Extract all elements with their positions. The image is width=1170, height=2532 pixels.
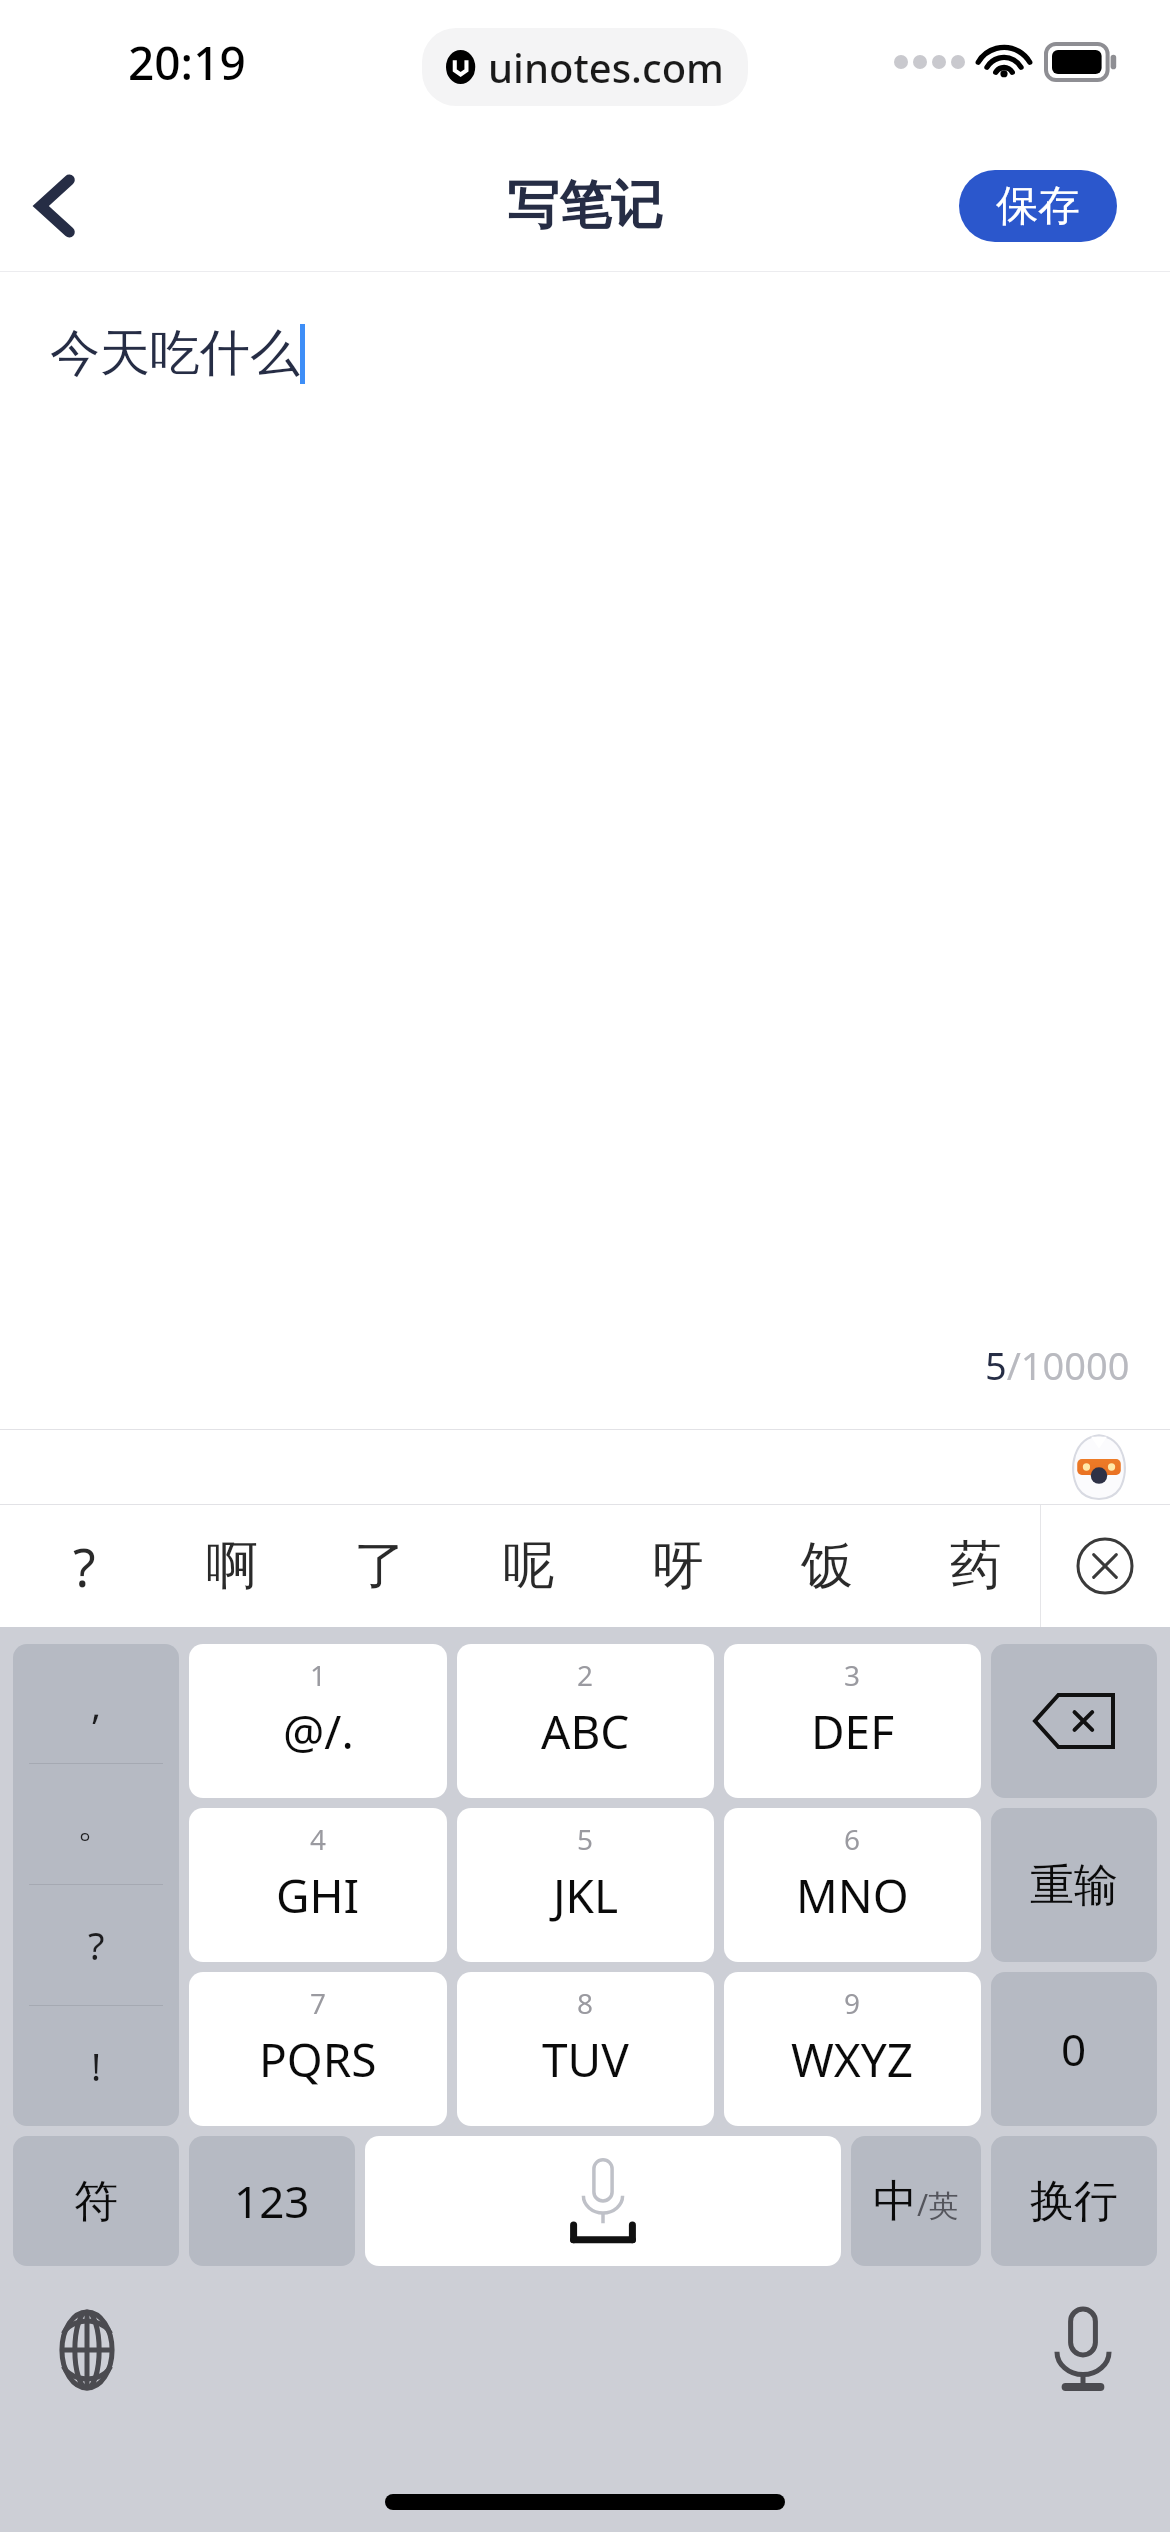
staticText: 7 xyxy=(310,1984,327,2022)
button[interactable]: 6 xyxy=(724,1808,981,1962)
button[interactable]: 2 xyxy=(457,1644,714,1798)
button[interactable]: 换行 xyxy=(991,2136,1157,2266)
staticText: uinotes.com xyxy=(488,40,724,94)
button[interactable]: 0 xyxy=(991,1972,1157,2126)
staticText: ! xyxy=(91,2040,102,2092)
staticText: , xyxy=(91,1678,102,1730)
button[interactable]: 中/英 xyxy=(851,2136,981,2266)
staticText: 0 xyxy=(1061,2019,1087,2079)
button[interactable]: 7 xyxy=(189,1972,447,2126)
button[interactable]: Backspace xyxy=(991,1644,1157,1798)
button[interactable]: ? xyxy=(10,1505,158,1627)
staticText: 呀 xyxy=(652,1533,704,1599)
staticText: TUV xyxy=(542,2028,629,2091)
staticText: DEF xyxy=(811,1700,895,1763)
button[interactable]: Close candidates xyxy=(1040,1505,1170,1627)
button[interactable]: Voice input xyxy=(1038,2305,1128,2395)
staticText: ? xyxy=(88,1919,105,1971)
staticText: 5 xyxy=(577,1820,594,1858)
staticText: 20:19 xyxy=(128,31,246,94)
button[interactable]: 4 xyxy=(189,1808,447,1962)
staticText: 了 xyxy=(354,1533,406,1599)
staticText: 药 xyxy=(950,1533,1002,1599)
button[interactable]: 呀 xyxy=(603,1505,752,1627)
staticText: WXYZ xyxy=(791,2028,914,2091)
button[interactable]: 8 xyxy=(457,1972,714,2126)
button[interactable]: , xyxy=(13,1644,179,2126)
button[interactable]: Switch keyboard xyxy=(42,2305,132,2395)
button[interactable]: 啊 xyxy=(158,1505,306,1627)
staticText: 5/10000 xyxy=(985,1339,1130,1391)
staticText: @/. xyxy=(283,1700,354,1763)
staticText: 9 xyxy=(844,1984,861,2022)
staticText: 1 xyxy=(310,1656,327,1694)
staticText: 写笔记 xyxy=(507,173,663,239)
button[interactable]: 5 xyxy=(457,1808,714,1962)
button[interactable]: Emoji xyxy=(1062,1430,1136,1504)
button[interactable]: 9 xyxy=(724,1972,981,2126)
staticText: 重输 xyxy=(1030,1858,1118,1913)
staticText: PQRS xyxy=(259,2028,377,2091)
staticText: 。 xyxy=(77,1800,115,1848)
staticText: 保存 xyxy=(996,180,1080,233)
staticText: 3 xyxy=(844,1656,861,1694)
staticText: 符 xyxy=(74,2174,118,2229)
button[interactable]: 保存 xyxy=(959,170,1117,242)
button[interactable]: 药 xyxy=(901,1505,1050,1627)
staticText: 8 xyxy=(577,1984,594,2022)
button[interactable]: 了 xyxy=(306,1505,454,1627)
staticText: 今天吃什么 xyxy=(50,322,300,385)
staticText: ? xyxy=(73,1531,96,1602)
staticText: 啊 xyxy=(206,1533,258,1599)
button[interactable]: 饭 xyxy=(752,1505,901,1627)
button[interactable]: 呢 xyxy=(454,1505,603,1627)
staticText: 饭 xyxy=(801,1533,853,1599)
staticText: GHI xyxy=(276,1864,360,1927)
staticText: ABC xyxy=(541,1700,630,1763)
button[interactable]: Space, voice input xyxy=(365,2136,841,2266)
button[interactable]: 1 xyxy=(189,1644,447,1798)
staticText: JKL xyxy=(553,1864,619,1927)
staticText: 6 xyxy=(844,1820,861,1858)
button[interactable]: 符 xyxy=(13,2136,179,2266)
staticText: 123 xyxy=(234,2171,310,2231)
button[interactable]: 123 xyxy=(189,2136,355,2266)
button[interactable]: 3 xyxy=(724,1644,981,1798)
staticText: 换行 xyxy=(1030,2174,1118,2229)
button[interactable]: 重输 xyxy=(991,1808,1157,1962)
staticText: 4 xyxy=(310,1820,327,1858)
staticText: 2 xyxy=(577,1656,594,1694)
button[interactable]: Back xyxy=(0,151,110,261)
staticText: 中/英 xyxy=(873,2174,959,2229)
staticText: MNO xyxy=(796,1864,909,1927)
staticText: 呢 xyxy=(503,1533,555,1599)
